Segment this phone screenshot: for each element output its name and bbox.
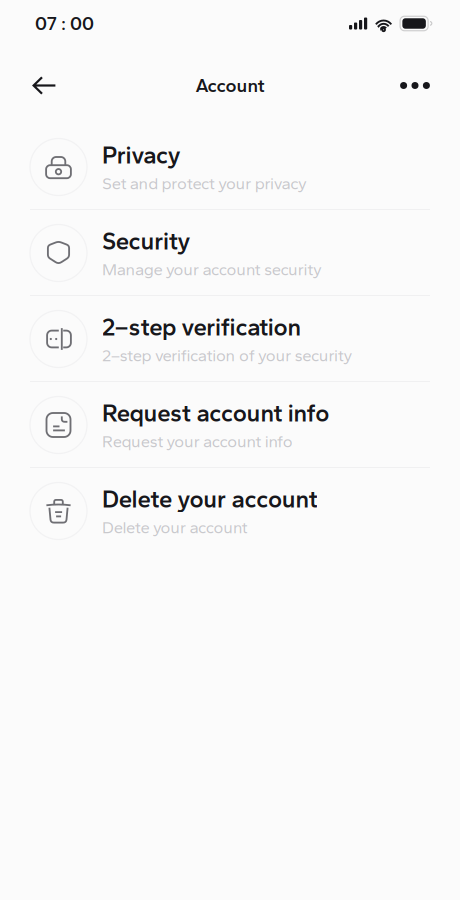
staticText: Set and protect your privacy: [102, 173, 307, 193]
staticText: Request your account info: [102, 431, 293, 451]
staticText: 2–step verification: [102, 313, 301, 341]
button[interactable]: Privacy: [0, 124, 460, 210]
staticText: Privacy: [102, 141, 181, 169]
button[interactable]: 2–step verification: [0, 296, 460, 382]
button[interactable]: Delete your account: [0, 468, 460, 554]
staticText: 2–step verification of your security: [102, 345, 352, 365]
staticText: Manage your account security: [102, 259, 322, 279]
staticText: Request account info: [102, 399, 329, 427]
staticText: Delete your account: [102, 517, 248, 537]
button[interactable]: More options: [382, 63, 428, 107]
staticText: 07 : 00: [35, 12, 94, 35]
button[interactable]: Security: [0, 210, 460, 296]
staticText: Account: [195, 74, 264, 97]
staticText: Delete your account: [102, 485, 317, 513]
button[interactable]: Back: [32, 63, 78, 107]
staticText: Security: [102, 227, 191, 255]
button[interactable]: Request account info: [0, 382, 460, 468]
